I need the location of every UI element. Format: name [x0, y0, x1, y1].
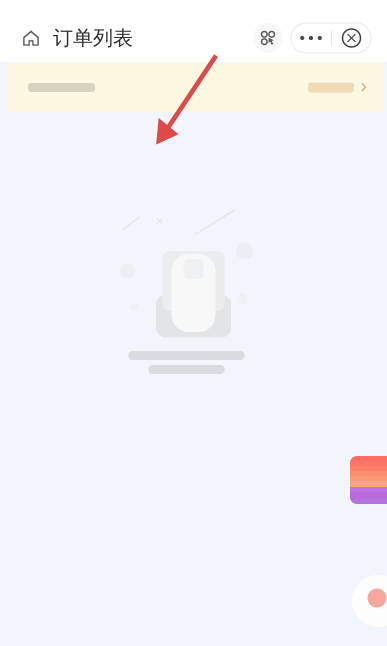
button[interactable]: Promotion [350, 456, 387, 504]
button[interactable]: More [291, 23, 331, 53]
button[interactable]: Customer service [351, 574, 387, 628]
staticText: 订单列表 [53, 26, 133, 50]
button[interactable]: 订单列表 [0, 14, 143, 62]
button[interactable]: Mini program list [251, 21, 285, 55]
button[interactable] [0, 63, 387, 112]
button[interactable]: Close [332, 23, 371, 53]
